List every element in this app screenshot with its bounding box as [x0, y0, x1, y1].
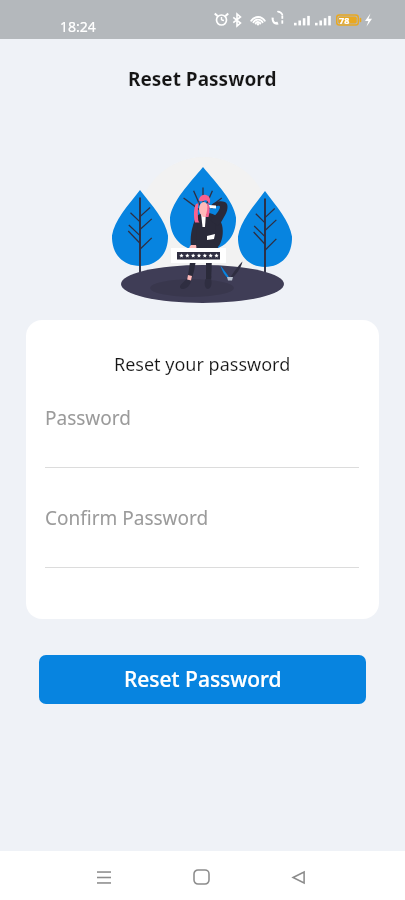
staticText: 78: [339, 14, 350, 26]
staticText: Reset Password: [128, 66, 277, 92]
button[interactable]: Recents: [85, 862, 123, 892]
staticText: Reset Password: [124, 665, 282, 694]
button[interactable]: Back: [279, 862, 317, 892]
staticText: Reset your password: [114, 352, 291, 377]
button[interactable]: Home: [182, 862, 220, 892]
staticText: Confirm Password: [45, 505, 209, 531]
staticText: Password: [45, 405, 131, 431]
staticText: 18:24: [60, 17, 96, 36]
button[interactable]: Reset Password: [39, 655, 366, 704]
